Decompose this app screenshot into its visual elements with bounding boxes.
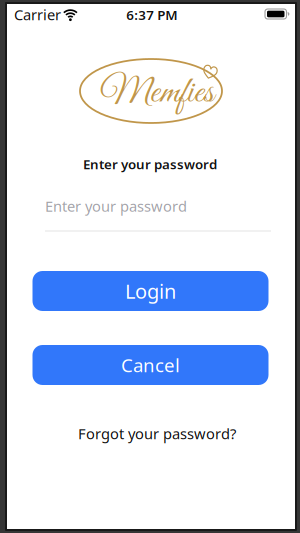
staticText: 6:37 PM [126,6,177,24]
staticText: Memfies [100,70,214,116]
staticText: Cancel [121,353,180,377]
button[interactable]: Login [32,271,268,311]
button[interactable]: Cancel [32,345,268,385]
button[interactable]: Enter your password [45,199,271,232]
button[interactable]: Forgot your password? [78,424,236,443]
staticText: Enter your password [83,155,217,173]
staticText: Carrier [14,5,61,24]
staticText: Enter your password [45,196,187,216]
staticText: Forgot your password? [78,424,236,443]
staticText: Login [125,278,176,304]
